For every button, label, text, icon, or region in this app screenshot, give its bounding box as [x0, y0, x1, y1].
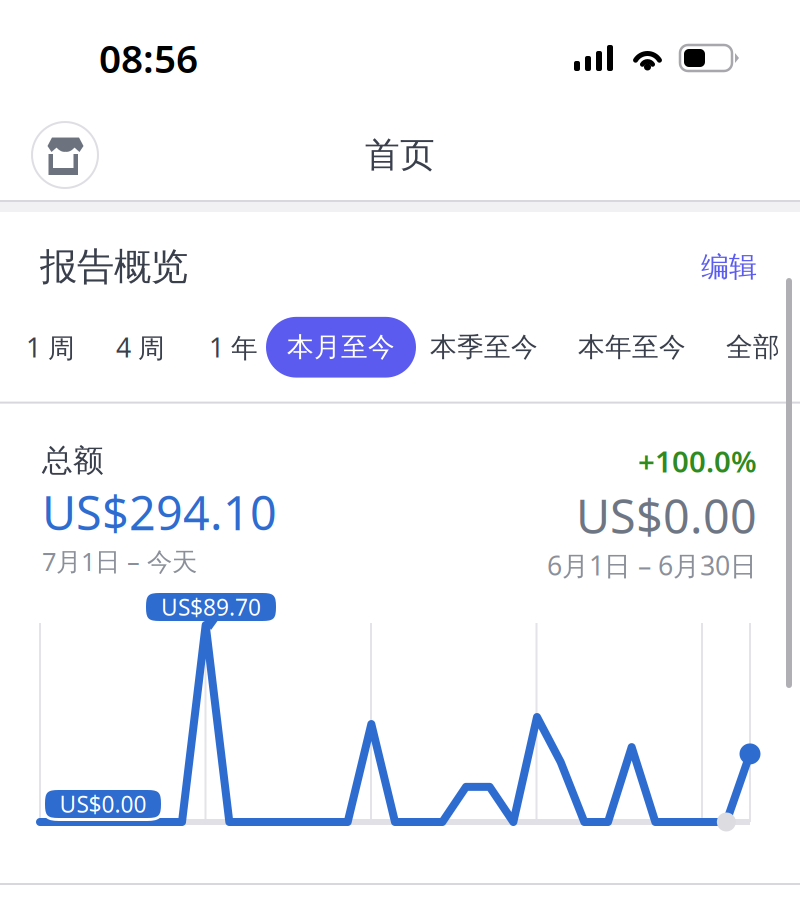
button[interactable]: 编辑 — [701, 250, 757, 284]
staticText: US$0.00 — [576, 485, 757, 547]
staticText: 本季至今 — [430, 331, 538, 364]
staticText: 4 周 — [116, 329, 165, 365]
staticText: US$89.70 — [161, 592, 261, 622]
button[interactable]: 本年至今 — [578, 331, 686, 364]
staticText: 1 周 — [26, 329, 75, 365]
button[interactable]: 4 周 — [116, 329, 165, 365]
staticText: 首页 — [365, 134, 435, 176]
button[interactable]: 全部 — [726, 331, 780, 364]
button[interactable]: 1 周 — [26, 329, 75, 365]
staticText: 7月1日 – 今天 — [42, 544, 197, 578]
staticText: US$0.00 — [59, 789, 146, 819]
staticText: +100.0% — [638, 442, 757, 481]
staticText: 报告概览 — [40, 244, 188, 290]
staticText: 1 年 — [209, 329, 258, 365]
staticText: 本月至今 — [287, 331, 395, 364]
staticText: 6月1日 – 6月30日 — [547, 547, 757, 583]
button[interactable]: 1 年 — [209, 329, 258, 365]
staticText: 总额 — [42, 442, 104, 479]
staticText: 08:56 — [99, 32, 198, 84]
button[interactable]: 本季至今 — [430, 331, 538, 364]
staticText: 全部 — [726, 331, 780, 364]
button[interactable]: 本月至今 — [266, 317, 416, 378]
staticText: 编辑 — [701, 250, 757, 284]
staticText: 本年至今 — [578, 331, 686, 364]
button[interactable]: 商店 — [27, 117, 103, 193]
staticText: US$294.10 — [42, 481, 277, 543]
